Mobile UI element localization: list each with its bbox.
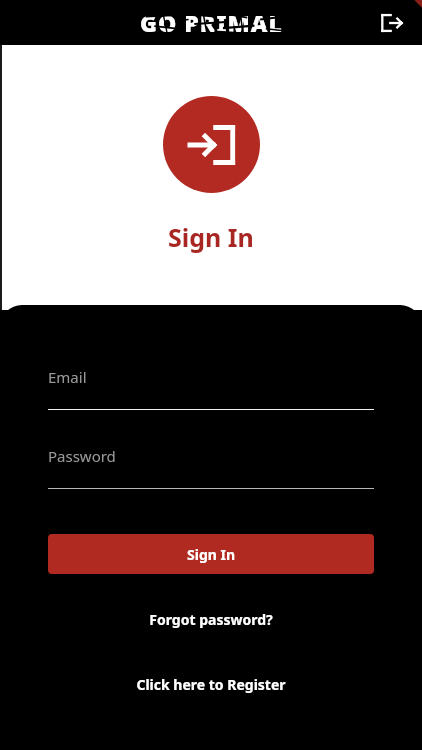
- staticText: Sign In: [187, 545, 236, 564]
- staticText: Sign In: [168, 220, 254, 254]
- button[interactable]: Email: [48, 367, 374, 410]
- button[interactable]: Sign In: [48, 534, 374, 574]
- button[interactable]: Click here to Register: [48, 667, 374, 702]
- staticText: Email: [48, 367, 87, 387]
- button[interactable]: Forgot password?: [48, 602, 374, 637]
- staticText: Click here to Register: [136, 675, 286, 694]
- staticText: Forgot password?: [149, 610, 273, 629]
- button[interactable]: Password: [48, 446, 374, 489]
- staticText: Password: [48, 446, 116, 466]
- button[interactable]: Sign out: [374, 5, 410, 41]
- staticText: GO PRIMAL: [140, 7, 283, 38]
